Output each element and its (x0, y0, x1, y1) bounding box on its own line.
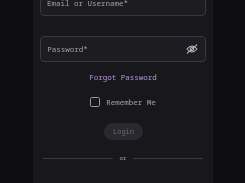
button[interactable]: Email or Username* (40, 0, 206, 16)
button[interactable]: Show password (183, 40, 201, 58)
staticText: Email or Username* (47, 0, 128, 8)
button[interactable]: Remember Me (88, 95, 158, 109)
staticText: Remember Me (106, 97, 156, 107)
staticText: Password* (47, 44, 88, 54)
button[interactable]: Login (104, 123, 143, 140)
staticText: Forgot Password (89, 72, 157, 82)
staticText: or (119, 154, 127, 162)
staticText: Login (113, 127, 134, 137)
button[interactable]: Forgot Password (86, 70, 160, 84)
button[interactable]: Password* (40, 36, 206, 62)
